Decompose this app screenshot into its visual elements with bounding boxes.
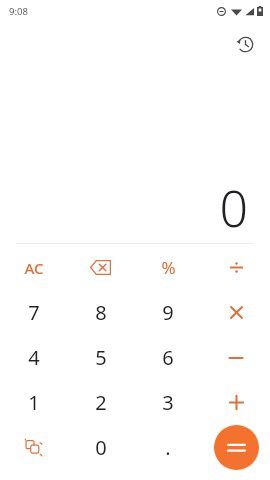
button[interactable]: Multiply [202,290,270,335]
staticText: % [161,256,176,279]
staticText: 1 [28,389,40,416]
button[interactable]: Divide [202,245,270,290]
button[interactable]: Backspace [67,245,134,290]
button[interactable]: 4 [0,335,67,380]
staticText: 3 [162,389,174,416]
staticText: 6 [162,344,174,371]
button[interactable]: All clear [0,245,67,290]
button[interactable]: History [229,28,261,60]
staticText: 9:08 [9,5,28,18]
button[interactable]: 8 [67,290,134,335]
button[interactable]: Plus [202,380,270,425]
button[interactable]: 3 [134,380,202,425]
staticText: 0 [95,434,107,461]
button[interactable]: Decimal point [134,425,202,470]
button[interactable]: 7 [0,290,67,335]
staticText: 9 [162,299,174,326]
button[interactable]: 1 [0,380,67,425]
button[interactable]: 6 [134,335,202,380]
staticText: . [165,434,171,461]
button[interactable]: Minus [202,335,270,380]
staticText: 2 [95,389,107,416]
button[interactable]: 2 [67,380,134,425]
button[interactable]: Percent [134,245,202,290]
button[interactable]: Unit converter [0,425,67,470]
staticText: 0 [219,174,248,242]
staticText: 4 [28,344,40,371]
staticText: 8 [95,299,107,326]
staticText: 5 [95,344,107,371]
staticText: 7 [28,299,40,326]
button[interactable]: 5 [67,335,134,380]
button[interactable]: 0 [67,425,134,470]
button[interactable]: 9 [134,290,202,335]
staticText: AC [24,258,44,278]
button[interactable]: Equals [214,425,259,470]
